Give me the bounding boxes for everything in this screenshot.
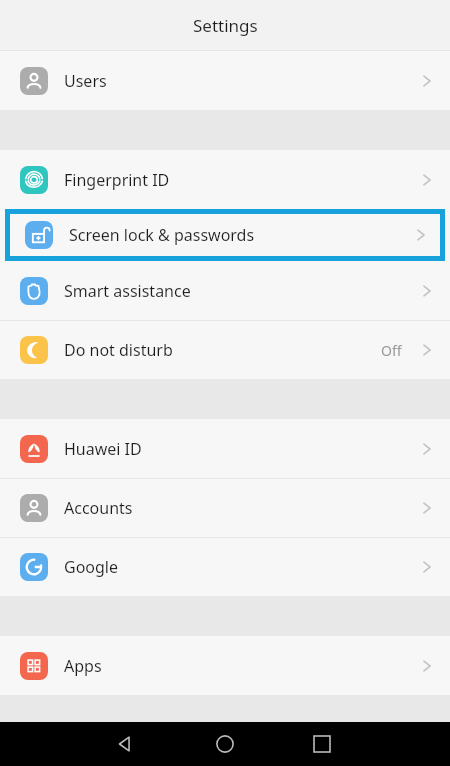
button[interactable]: Smart assistance bbox=[0, 261, 450, 320]
staticText: Screen lock & passwords bbox=[69, 224, 255, 246]
staticText: Accounts bbox=[64, 497, 133, 519]
button[interactable]: Home bbox=[201, 722, 249, 766]
staticText: Off bbox=[381, 341, 402, 360]
button[interactable]: Do not disturb bbox=[0, 321, 450, 379]
staticText: Google bbox=[64, 556, 119, 578]
staticText: Do not disturb bbox=[64, 339, 173, 361]
button[interactable]: Apps bbox=[0, 636, 450, 695]
staticText: Users bbox=[64, 70, 107, 92]
staticText: Apps bbox=[64, 655, 102, 677]
staticText: Fingerprint ID bbox=[64, 169, 170, 191]
button[interactable]: Fingerprint ID bbox=[0, 150, 450, 209]
button[interactable]: Screen lock & passwords bbox=[10, 214, 440, 256]
button[interactable]: Huawei ID bbox=[0, 419, 450, 478]
staticText: Huawei ID bbox=[64, 438, 142, 460]
staticText: Settings bbox=[193, 14, 258, 37]
button[interactable]: Users bbox=[0, 51, 450, 110]
staticText: Smart assistance bbox=[64, 280, 191, 302]
button[interactable]: Recents bbox=[298, 722, 346, 766]
button[interactable]: Back bbox=[100, 722, 148, 766]
button[interactable]: Google bbox=[0, 538, 450, 596]
button[interactable]: Accounts bbox=[0, 479, 450, 537]
